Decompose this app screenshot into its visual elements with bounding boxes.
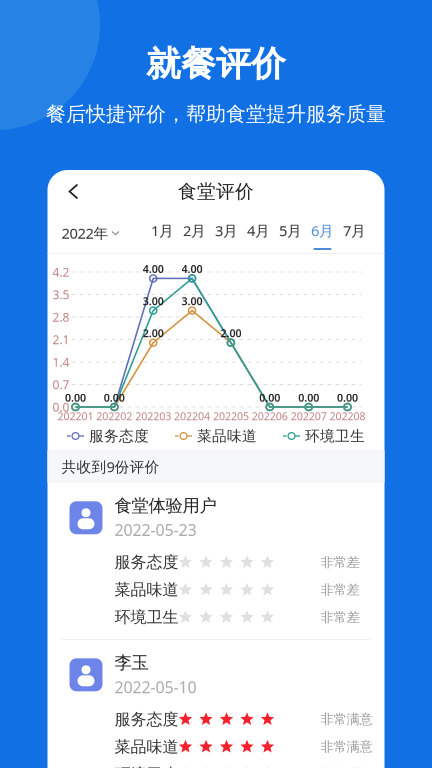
button[interactable]: 1月 <box>146 213 178 253</box>
staticText: 3.00 <box>182 294 203 308</box>
staticText: 202203 <box>135 409 171 423</box>
staticText: 6月 <box>311 221 334 240</box>
staticText: 0.0 <box>52 399 69 415</box>
staticText: 非常满意 <box>320 711 372 727</box>
staticText: 共收到9份评价 <box>61 457 159 476</box>
staticText: 菜品味道 <box>114 737 178 757</box>
button[interactable]: 2022年 <box>61 213 119 253</box>
staticText: 4.2 <box>52 264 69 280</box>
staticText: 服务态度 <box>89 427 149 445</box>
staticText: 0.00 <box>104 390 125 405</box>
staticText: 环境卫生 <box>114 764 178 768</box>
staticText: 服务态度 <box>114 709 178 729</box>
staticText: 0.00 <box>298 390 319 405</box>
staticText: 2022-05-23 <box>114 519 196 540</box>
staticText: 1月 <box>151 221 174 240</box>
staticText: 2022年 <box>61 223 108 243</box>
staticText: 3月 <box>215 221 238 240</box>
staticText: 202202 <box>96 409 132 423</box>
staticText: 3.00 <box>143 294 164 308</box>
button[interactable]: 3月 <box>210 213 242 253</box>
staticText: 2.1 <box>52 331 69 347</box>
staticText: 0.00 <box>337 390 358 405</box>
staticText: 0.00 <box>65 390 86 405</box>
staticText: 4月 <box>247 221 270 240</box>
staticText: 202208 <box>329 409 365 423</box>
button[interactable]: 7月 <box>338 213 370 253</box>
staticText: 非常差 <box>320 582 359 598</box>
button[interactable]: 4月 <box>242 213 274 253</box>
staticText: 2.00 <box>143 326 164 340</box>
staticText: 李玉 <box>114 652 148 673</box>
staticText: 2月 <box>183 221 206 240</box>
staticText: 环境卫生 <box>305 427 365 445</box>
staticText: 2.00 <box>220 326 241 340</box>
staticText: 202201 <box>57 409 93 423</box>
staticText: 就餐评价 <box>146 43 286 85</box>
button[interactable]: Back <box>59 176 89 206</box>
staticText: 2022-05-10 <box>114 676 196 697</box>
staticText: 3.5 <box>52 286 69 302</box>
staticText: 4.00 <box>143 262 164 276</box>
staticText: 食堂体验用户 <box>114 495 216 516</box>
staticText: 202206 <box>252 409 288 423</box>
staticText: 2.8 <box>52 309 69 325</box>
staticText: 202204 <box>174 409 210 423</box>
staticText: 菜品味道 <box>114 580 178 600</box>
staticText: 5月 <box>279 221 302 240</box>
staticText: 非常满意 <box>320 766 372 768</box>
staticText: 202205 <box>213 409 249 423</box>
staticText: 0.7 <box>52 376 69 392</box>
staticText: 非常差 <box>320 554 359 570</box>
staticText: 202207 <box>291 409 327 423</box>
staticText: 菜品味道 <box>197 427 257 445</box>
button[interactable]: 2月 <box>178 213 210 253</box>
staticText: 服务态度 <box>114 552 178 572</box>
staticText: 餐后快捷评价，帮助食堂提升服务质量 <box>46 102 386 126</box>
staticText: 环境卫生 <box>114 607 178 627</box>
staticText: 非常满意 <box>320 739 372 755</box>
staticText: 非常差 <box>320 609 359 625</box>
staticText: 4.00 <box>182 262 203 276</box>
staticText: 食堂评价 <box>178 180 254 203</box>
staticText: 7月 <box>343 221 366 240</box>
button[interactable]: 6月 <box>306 213 338 253</box>
button[interactable]: 5月 <box>274 213 306 253</box>
staticText: 0.00 <box>259 390 280 405</box>
staticText: 1.4 <box>52 354 69 370</box>
